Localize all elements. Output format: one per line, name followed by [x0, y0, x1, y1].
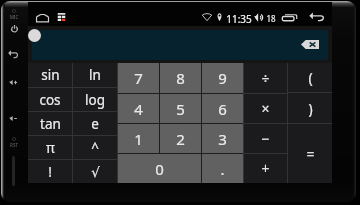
staticText: ( — [308, 68, 313, 87]
staticText: log — [85, 91, 105, 109]
button[interactable]: Home — [32, 10, 52, 26]
button[interactable]: Back — [5, 47, 20, 61]
staticText: MIC — [7, 14, 21, 20]
staticText: ! — [48, 163, 52, 181]
button[interactable]: Back — [306, 8, 327, 25]
button[interactable]: Recents — [279, 9, 300, 25]
button[interactable]: √ — [73, 160, 117, 183]
button[interactable]: 7 — [118, 63, 159, 93]
staticText: RST — [7, 142, 21, 148]
button[interactable]: 9 — [202, 63, 243, 93]
button[interactable]: tan — [28, 112, 72, 135]
staticText: 18 — [266, 13, 276, 24]
button[interactable]: 8 — [160, 63, 201, 93]
staticText: ln — [89, 66, 101, 84]
button[interactable]: Calculator — [53, 9, 69, 25]
button[interactable]: 2 — [160, 124, 201, 153]
button[interactable]: ln — [73, 63, 117, 87]
button[interactable]: log — [73, 88, 117, 111]
button[interactable]: cos — [28, 88, 72, 111]
button[interactable]: Backspace — [297, 37, 323, 52]
button[interactable]: × — [244, 94, 287, 123]
button[interactable]: π — [28, 136, 72, 159]
button[interactable]: e — [73, 112, 117, 135]
staticText: 2 — [176, 129, 185, 149]
button[interactable]: Power — [8, 22, 21, 35]
button[interactable]: sin — [28, 63, 72, 87]
staticText: 9 — [218, 68, 227, 88]
button[interactable]: Volume up — [6, 76, 19, 88]
staticText: × — [261, 99, 270, 118]
staticText: + — [261, 159, 270, 178]
button[interactable]: 4 — [118, 94, 159, 123]
staticText: 1 — [134, 129, 143, 149]
staticText: √ — [91, 164, 100, 180]
button[interactable]: = — [288, 124, 332, 183]
button[interactable]: ( — [288, 63, 332, 92]
staticText: ^ — [91, 139, 99, 157]
button[interactable]: 0 — [118, 154, 201, 183]
button[interactable]: + — [244, 154, 287, 183]
button[interactable]: − — [244, 124, 287, 153]
button[interactable]: . — [202, 154, 243, 183]
button[interactable]: ÷ — [244, 63, 287, 93]
staticText: . — [220, 159, 225, 179]
staticText: = — [306, 144, 315, 163]
button[interactable]: 6 — [202, 94, 243, 123]
staticText: 5 — [176, 99, 185, 119]
staticText: ) — [308, 99, 313, 118]
button[interactable]: 1 — [118, 124, 159, 153]
staticText: 4 — [134, 99, 143, 119]
staticText: 0 — [155, 159, 164, 179]
staticText: sin — [41, 66, 60, 84]
button[interactable]: ) — [288, 93, 332, 123]
button[interactable]: ! — [28, 160, 72, 183]
staticText: 6 — [218, 99, 227, 119]
staticText: 7 — [134, 68, 143, 88]
staticText: 8 — [176, 68, 185, 88]
staticText: 3 — [218, 129, 227, 149]
button[interactable]: 3 — [202, 124, 243, 153]
staticText: π — [46, 139, 55, 157]
staticText: 11:35 — [226, 12, 252, 26]
staticText: e — [91, 115, 99, 133]
staticText: − — [261, 129, 270, 148]
staticText: cos — [39, 91, 61, 109]
button[interactable]: ^ — [73, 136, 117, 159]
button[interactable]: Volume down — [6, 112, 19, 124]
staticText: ÷ — [261, 69, 270, 88]
staticText: tan — [40, 115, 61, 133]
button[interactable]: 5 — [160, 94, 201, 123]
